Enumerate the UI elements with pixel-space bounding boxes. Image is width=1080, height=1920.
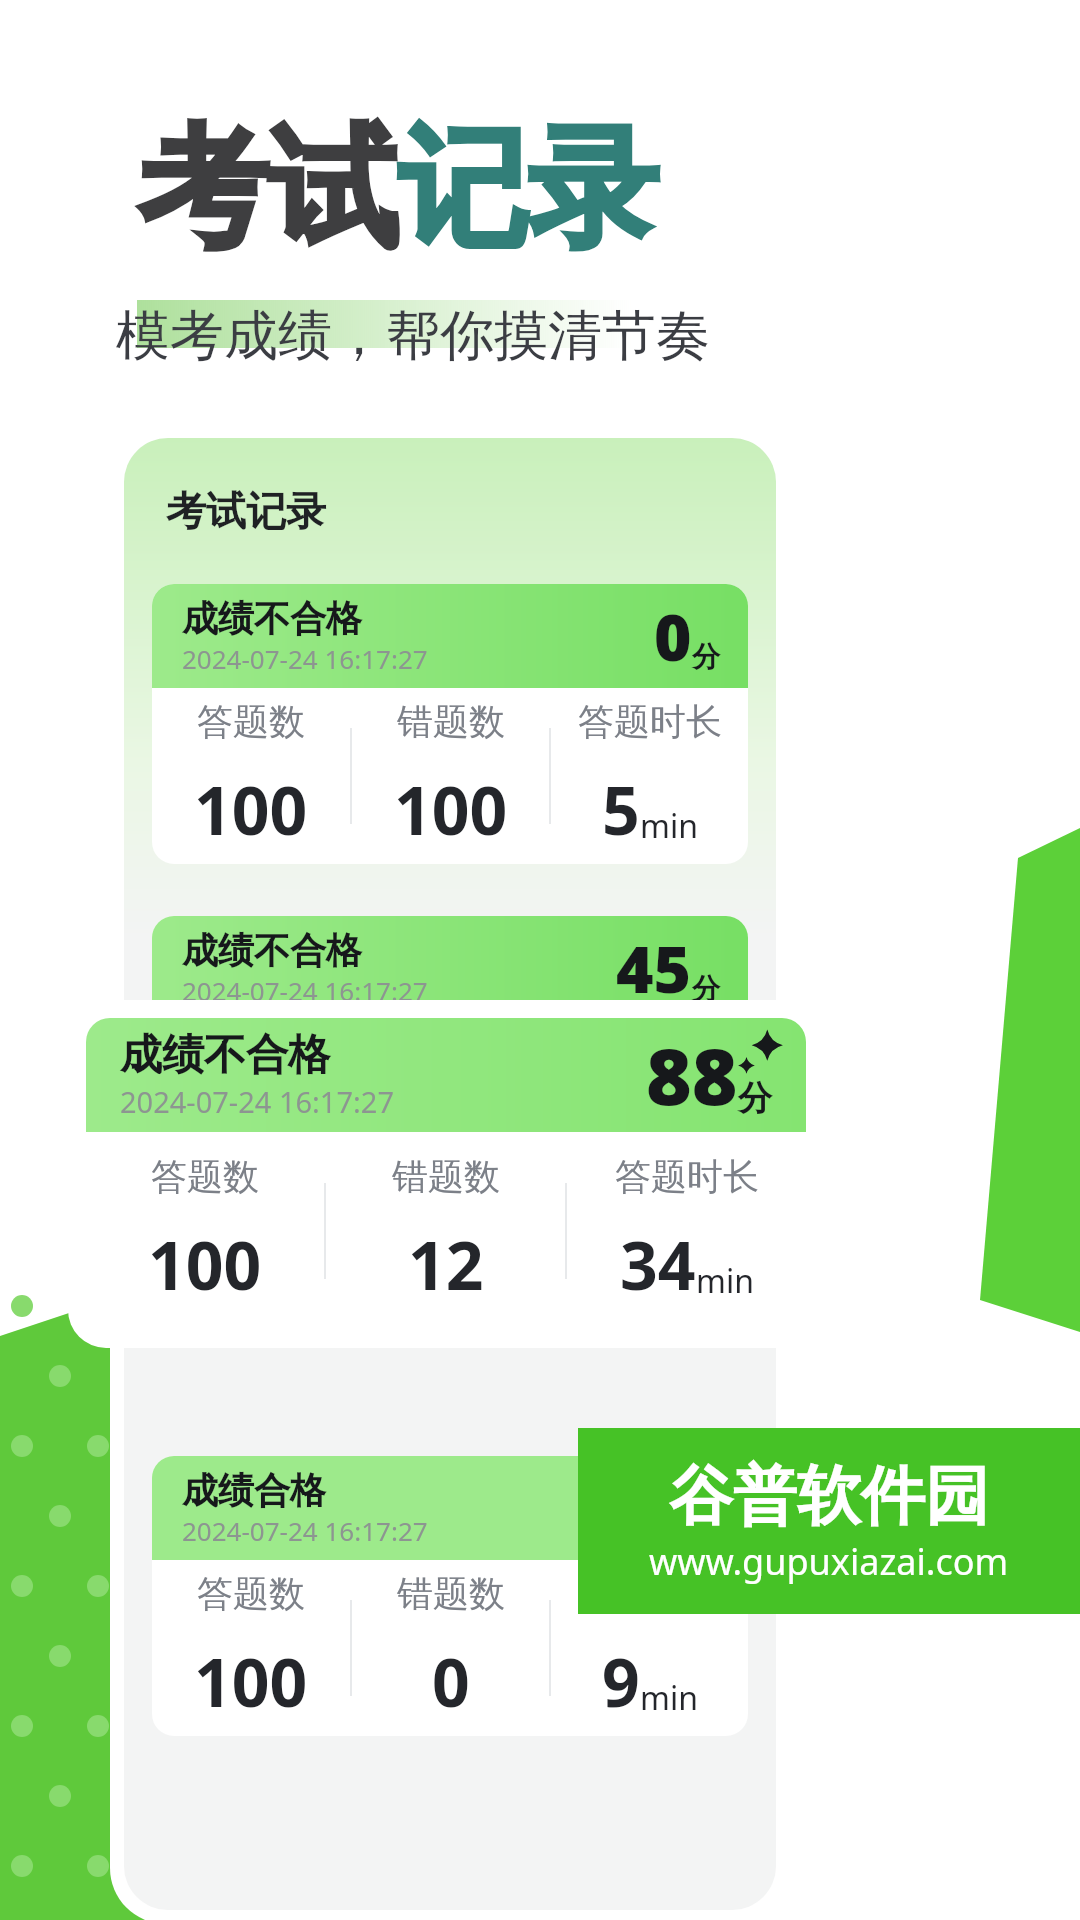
staticText: www.gupuxiazai.com [649, 1537, 1009, 1586]
staticText: 考试记录 [166, 486, 326, 536]
staticText: 12 [408, 1219, 484, 1309]
other: Highlight [734, 1028, 786, 1080]
staticText: 分 [692, 971, 720, 1006]
staticText: 成绩合格 [182, 1468, 326, 1513]
staticText: 45 [616, 925, 692, 1012]
staticText: 100 [394, 1096, 508, 1186]
staticText: 100 [394, 764, 508, 854]
staticText: 成绩不合格 [182, 928, 362, 973]
staticText: 答题时长 [578, 1031, 722, 1076]
staticText: 成绩不合格 [182, 596, 362, 641]
staticText: min [640, 804, 698, 848]
staticText: 模考成绩，帮你摸清节奏 [116, 302, 710, 370]
staticText: 分 [738, 1077, 772, 1120]
staticText: 0 [654, 593, 692, 680]
staticText: 2024-07-24 16:17:27 [120, 1082, 394, 1121]
staticText: 分 [692, 639, 720, 674]
staticText: 100 [579, 1465, 692, 1552]
staticText: 考试 [138, 108, 398, 272]
staticText: 错题数 [397, 1571, 505, 1616]
staticText: min [640, 1676, 698, 1720]
staticText: 5 [602, 764, 640, 854]
staticText: 9 [602, 1636, 640, 1726]
staticText: 0 [432, 1636, 470, 1726]
staticText: 答题时长 [578, 699, 722, 744]
staticText: 成绩不合格 [120, 1029, 330, 1082]
staticText: 100 [194, 764, 308, 854]
staticText: 分 [692, 1511, 720, 1546]
staticText: 答题数 [197, 1031, 305, 1076]
button[interactable]: 成绩不合格 [86, 1018, 806, 1330]
button[interactable]: 成绩不合格 [152, 584, 748, 864]
staticText: 100 [148, 1219, 262, 1309]
staticText: 答题数 [197, 1571, 305, 1616]
staticText: 2024-07-24 16:17:27 [182, 1513, 428, 1548]
staticText: 答题时长 [578, 1571, 722, 1616]
button[interactable]: 成绩不合格 [152, 916, 748, 1196]
staticText: 2024-07-24 16:17:27 [182, 641, 428, 676]
staticText: 记录 [398, 108, 658, 272]
staticText: 100 [194, 1096, 308, 1186]
staticText: 答题数 [197, 699, 305, 744]
staticText: 2024-07-24 16:17:27 [182, 973, 428, 1008]
staticText: min [640, 1136, 698, 1180]
staticText: 错题数 [397, 699, 505, 744]
staticText: 100 [194, 1636, 308, 1726]
staticText: 5 [602, 1096, 640, 1186]
staticText: 34 [620, 1219, 696, 1309]
staticText: min [696, 1259, 754, 1303]
staticText: 谷普软件园 [669, 1456, 989, 1537]
staticText: 答题时长 [615, 1154, 759, 1199]
button[interactable]: 成绩合格 [152, 1456, 748, 1736]
staticText: 88 [646, 1022, 738, 1128]
staticText: 答题数 [151, 1154, 259, 1199]
staticText: 错题数 [392, 1154, 500, 1199]
